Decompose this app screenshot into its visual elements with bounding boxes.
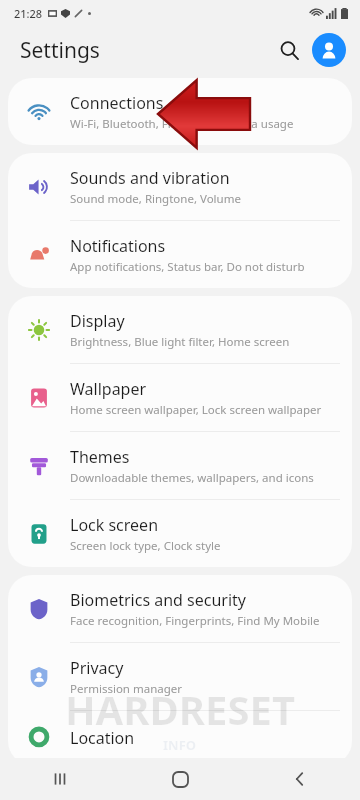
staticText: Biometrics and security xyxy=(70,589,247,611)
staticText: HARDRESET xyxy=(0,682,360,736)
button[interactable]: Search xyxy=(270,31,308,69)
staticText: Display xyxy=(70,310,125,332)
staticText: Sounds and vibration xyxy=(70,167,230,189)
staticText: Face recognition, Fingerprints, Find My … xyxy=(70,613,320,629)
button[interactable]: Themes xyxy=(8,432,352,499)
staticText: Home screen wallpaper, Lock screen wallp… xyxy=(70,402,322,418)
staticText: Themes xyxy=(70,446,130,468)
button[interactable]: Display xyxy=(8,296,352,363)
button[interactable]: Notifications xyxy=(8,221,352,288)
staticText: App notifications, Status bar, Do not di… xyxy=(70,259,305,275)
staticText: Lock screen xyxy=(70,514,159,536)
button[interactable]: Home xyxy=(120,758,240,800)
staticText: Settings xyxy=(20,36,100,65)
button[interactable]: Wallpaper xyxy=(8,364,352,431)
staticText: Privacy xyxy=(70,657,124,679)
button[interactable]: Privacy xyxy=(8,643,352,710)
button[interactable]: Sounds and vibration xyxy=(8,153,352,220)
button[interactable]: Lock screen xyxy=(8,500,352,567)
staticText: Location xyxy=(70,727,135,749)
staticText: Notifications xyxy=(70,235,166,257)
staticText: Wi-Fi, Bluetooth, Flight mode, Data usag… xyxy=(70,116,294,132)
button[interactable]: Biometrics and security xyxy=(8,575,352,642)
button[interactable]: Location xyxy=(8,711,352,765)
button[interactable]: Account xyxy=(312,33,346,67)
staticText: 21:28 xyxy=(14,6,43,21)
button[interactable]: Back xyxy=(240,758,360,800)
staticText: Screen lock type, Clock style xyxy=(70,538,221,554)
button[interactable]: Connections xyxy=(8,78,352,145)
staticText: Brightness, Blue light filter, Home scre… xyxy=(70,334,290,350)
staticText: Downloadable themes, wallpapers, and ico… xyxy=(70,470,314,486)
staticText: INFO xyxy=(163,736,197,754)
button[interactable]: Recents xyxy=(0,758,120,800)
staticText: Permission manager xyxy=(70,681,183,697)
staticText: Connections xyxy=(70,92,164,114)
staticText: Sound mode, Ringtone, Volume xyxy=(70,191,241,207)
staticText: Wallpaper xyxy=(70,378,147,400)
